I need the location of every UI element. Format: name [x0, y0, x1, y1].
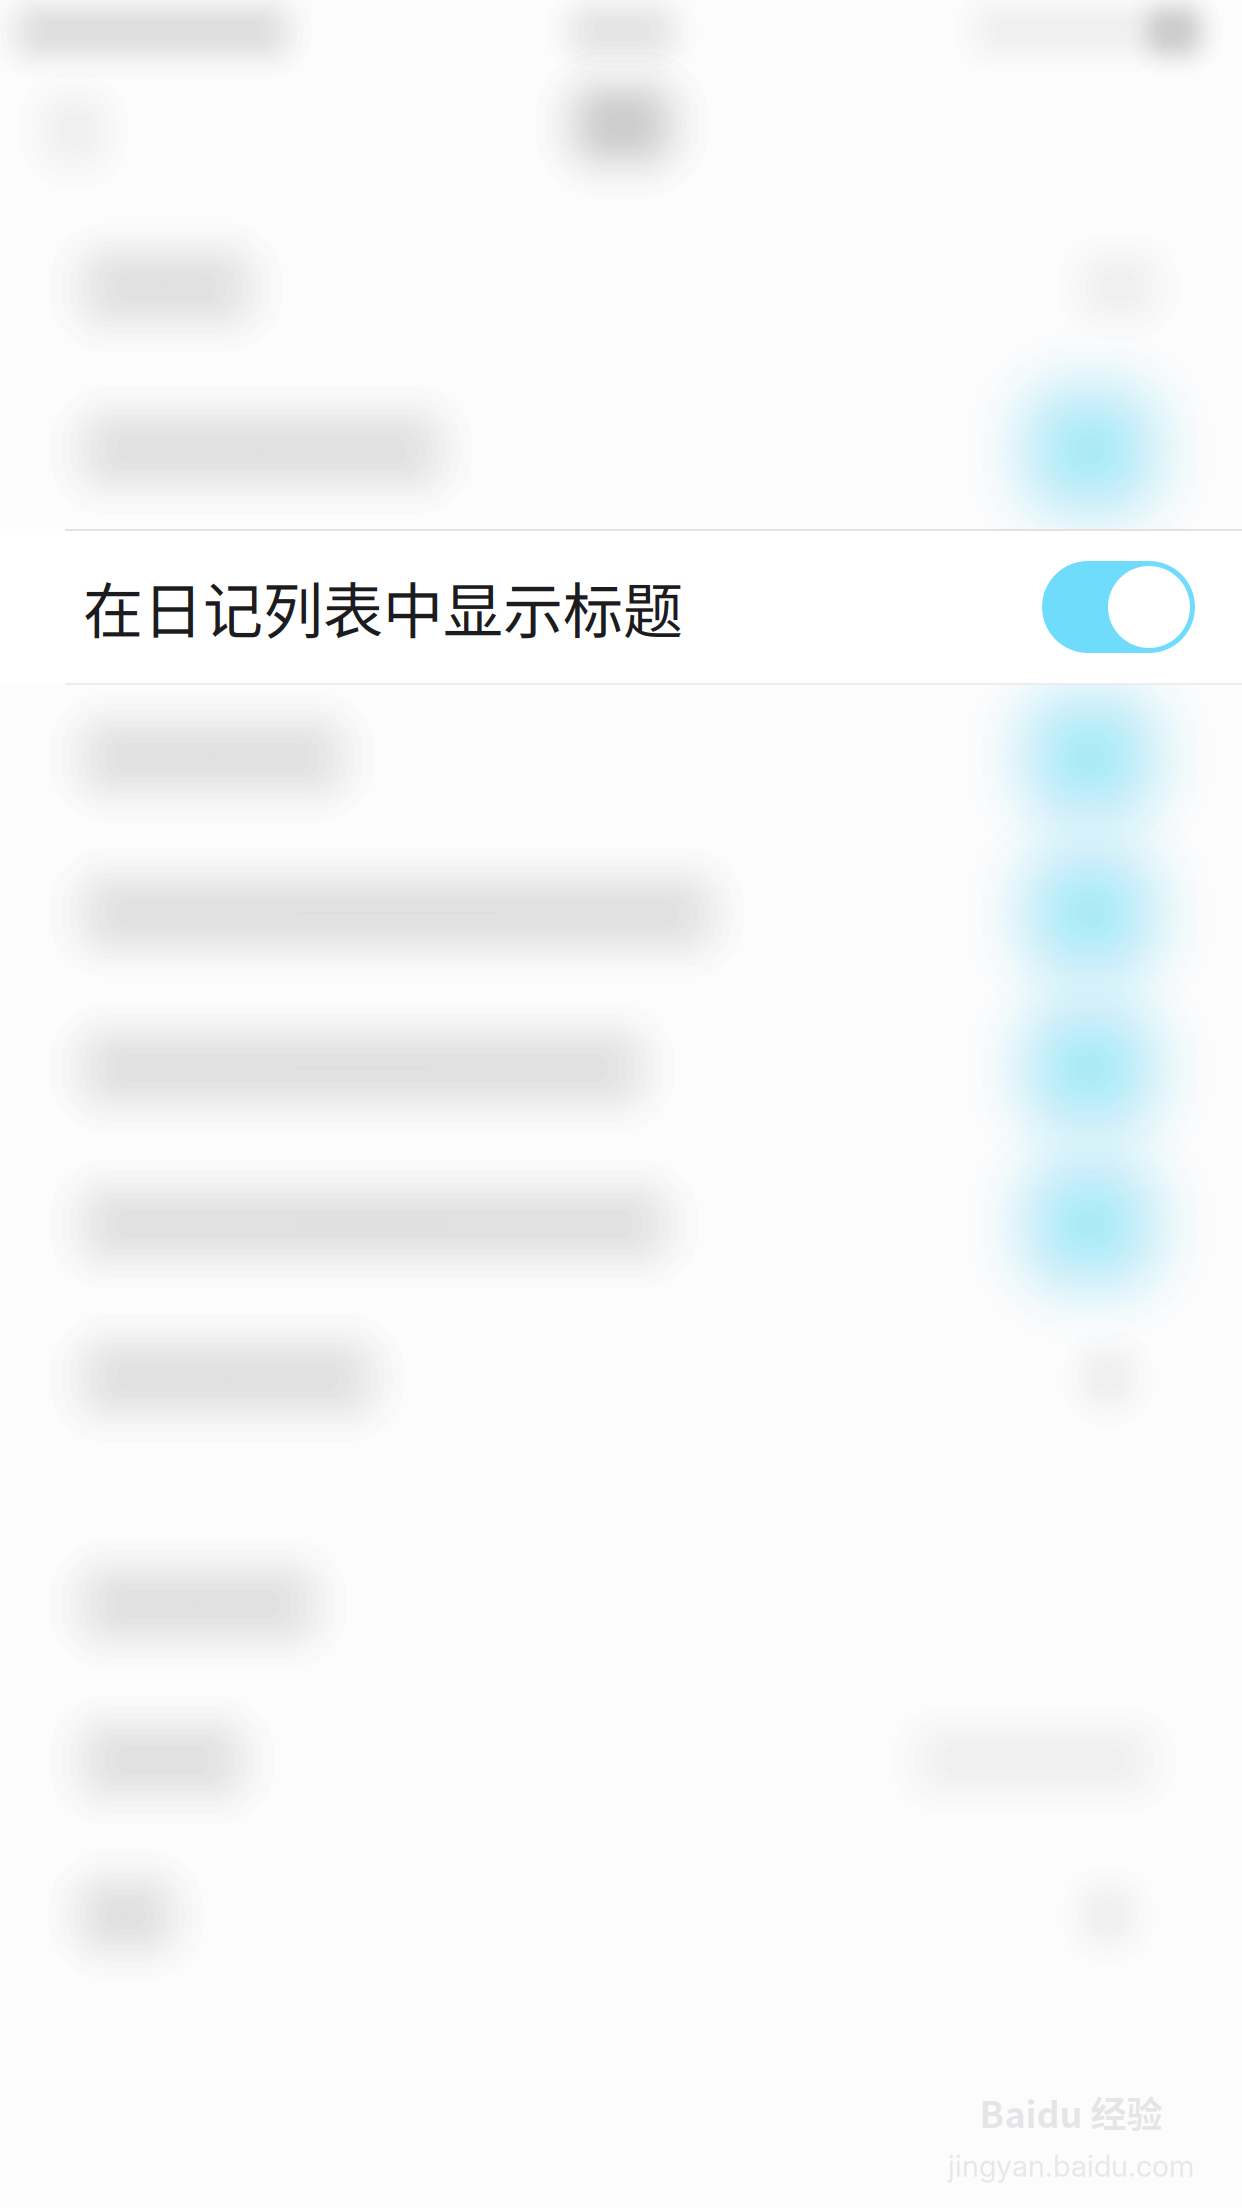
button[interactable]: 在日记列表中显示标题: [0, 529, 1242, 685]
staticText: Baidu 经验: [979, 2086, 1162, 2138]
staticText: 在日记列表中显示标题: [83, 564, 683, 650]
staticText: jingyan.baidu.com: [948, 2148, 1194, 2184]
